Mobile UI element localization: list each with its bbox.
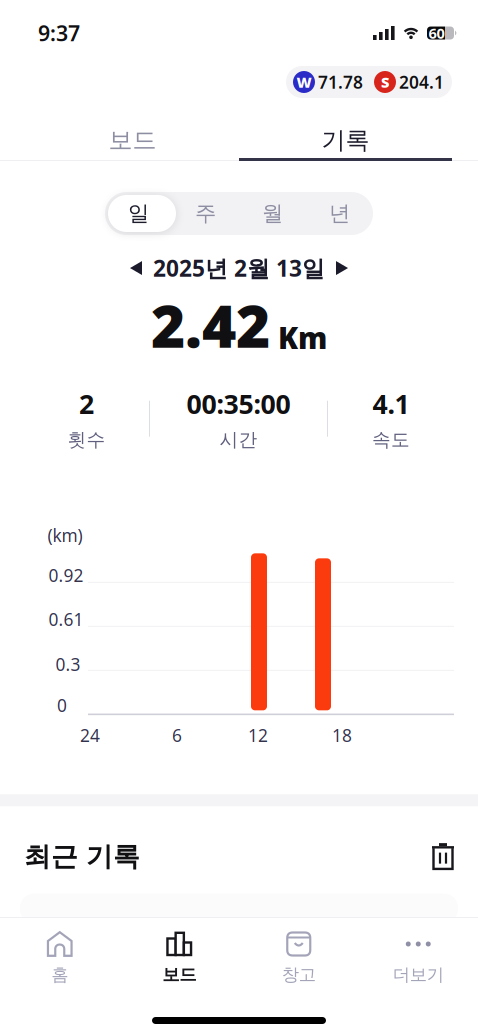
staticText: 24 [80, 724, 100, 747]
staticText: 속도 [372, 428, 410, 451]
staticText: 보드 [162, 964, 196, 985]
staticText: 204.1 [399, 70, 444, 93]
staticText: W [296, 72, 311, 92]
button[interactable]: 년 [306, 192, 373, 235]
staticText: (km) [47, 524, 82, 547]
staticText: 12 [248, 724, 268, 747]
button[interactable]: Next day [330, 255, 354, 281]
staticText: 최근 기록 [24, 840, 140, 873]
staticText: 기록 [321, 125, 369, 155]
button[interactable]: 일 [105, 192, 172, 235]
staticText: 년 [329, 200, 350, 227]
staticText: 0.3 [55, 653, 80, 676]
staticText: 0.61 [48, 608, 83, 631]
staticText: 홈 [51, 964, 68, 985]
staticText: 6 [172, 724, 182, 747]
button[interactable]: 월 [239, 192, 306, 235]
button[interactable]: 홈 [0, 931, 119, 985]
button[interactable]: 기록 [239, 104, 452, 161]
staticText: 시간 [219, 428, 257, 451]
staticText: 주 [195, 200, 216, 227]
staticText: 2 [79, 386, 94, 421]
staticText: 00:35:00 [186, 386, 290, 421]
button[interactable]: Delete records [432, 843, 454, 870]
staticText: Km [278, 318, 327, 357]
button[interactable]: 보드 [26, 104, 239, 161]
staticText: 보드 [108, 125, 156, 155]
button[interactable]: 주 [172, 192, 239, 235]
staticText: 0 [57, 694, 67, 717]
staticText: 60 [428, 23, 444, 43]
staticText: 월 [262, 200, 283, 227]
staticText: 일 [128, 200, 149, 227]
staticText: S [381, 72, 389, 92]
button[interactable]: 창고 [239, 931, 358, 985]
staticText: 2025년 2월 13일 [153, 253, 325, 283]
staticText: 2.42 [151, 286, 270, 364]
button[interactable]: 더보기 [358, 931, 478, 985]
staticText: 9:37 [38, 19, 80, 47]
button[interactable]: 보드 [119, 931, 239, 985]
staticText: 창고 [282, 964, 316, 985]
staticText: 0.92 [48, 564, 83, 587]
staticText: 횟수 [67, 428, 105, 451]
staticText: 4.1 [372, 386, 409, 421]
staticText: 더보기 [393, 964, 444, 985]
button[interactable]: Wallet balances [286, 66, 452, 98]
staticText: 71.78 [318, 70, 363, 93]
button[interactable]: Previous day [124, 255, 148, 281]
staticText: 18 [332, 724, 352, 747]
